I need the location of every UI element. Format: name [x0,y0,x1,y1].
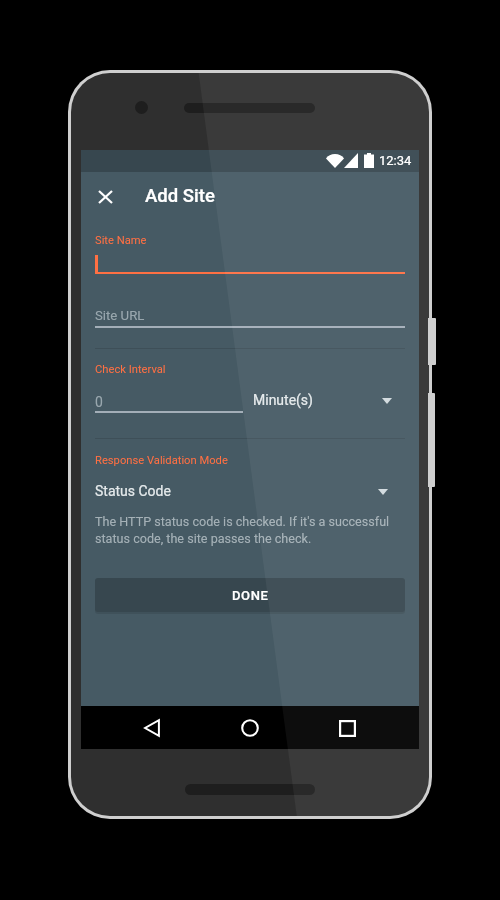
staticText: DONE [232,588,269,603]
staticText: Add Site [145,185,215,207]
staticText: 0 [95,394,103,410]
staticText: Check Interval [95,363,166,376]
staticText: The HTTP status code is checked. If it's… [95,514,390,546]
button[interactable]: DONE [95,578,405,612]
staticText: Minute(s) [253,392,313,408]
staticText: Status Code [95,483,171,499]
button[interactable]: Home [221,713,279,743]
button[interactable]: Back [123,713,181,743]
staticText: Site URL [95,308,145,323]
staticText: 12:34 [379,153,412,168]
button[interactable]: Close [89,181,121,213]
button[interactable]: Select validation mode [378,489,388,495]
button[interactable]: Recent apps [318,713,376,743]
staticText: Site Name [95,234,147,247]
button[interactable]: Select interval unit [382,398,392,404]
staticText: Response Validation Mode [95,454,228,467]
